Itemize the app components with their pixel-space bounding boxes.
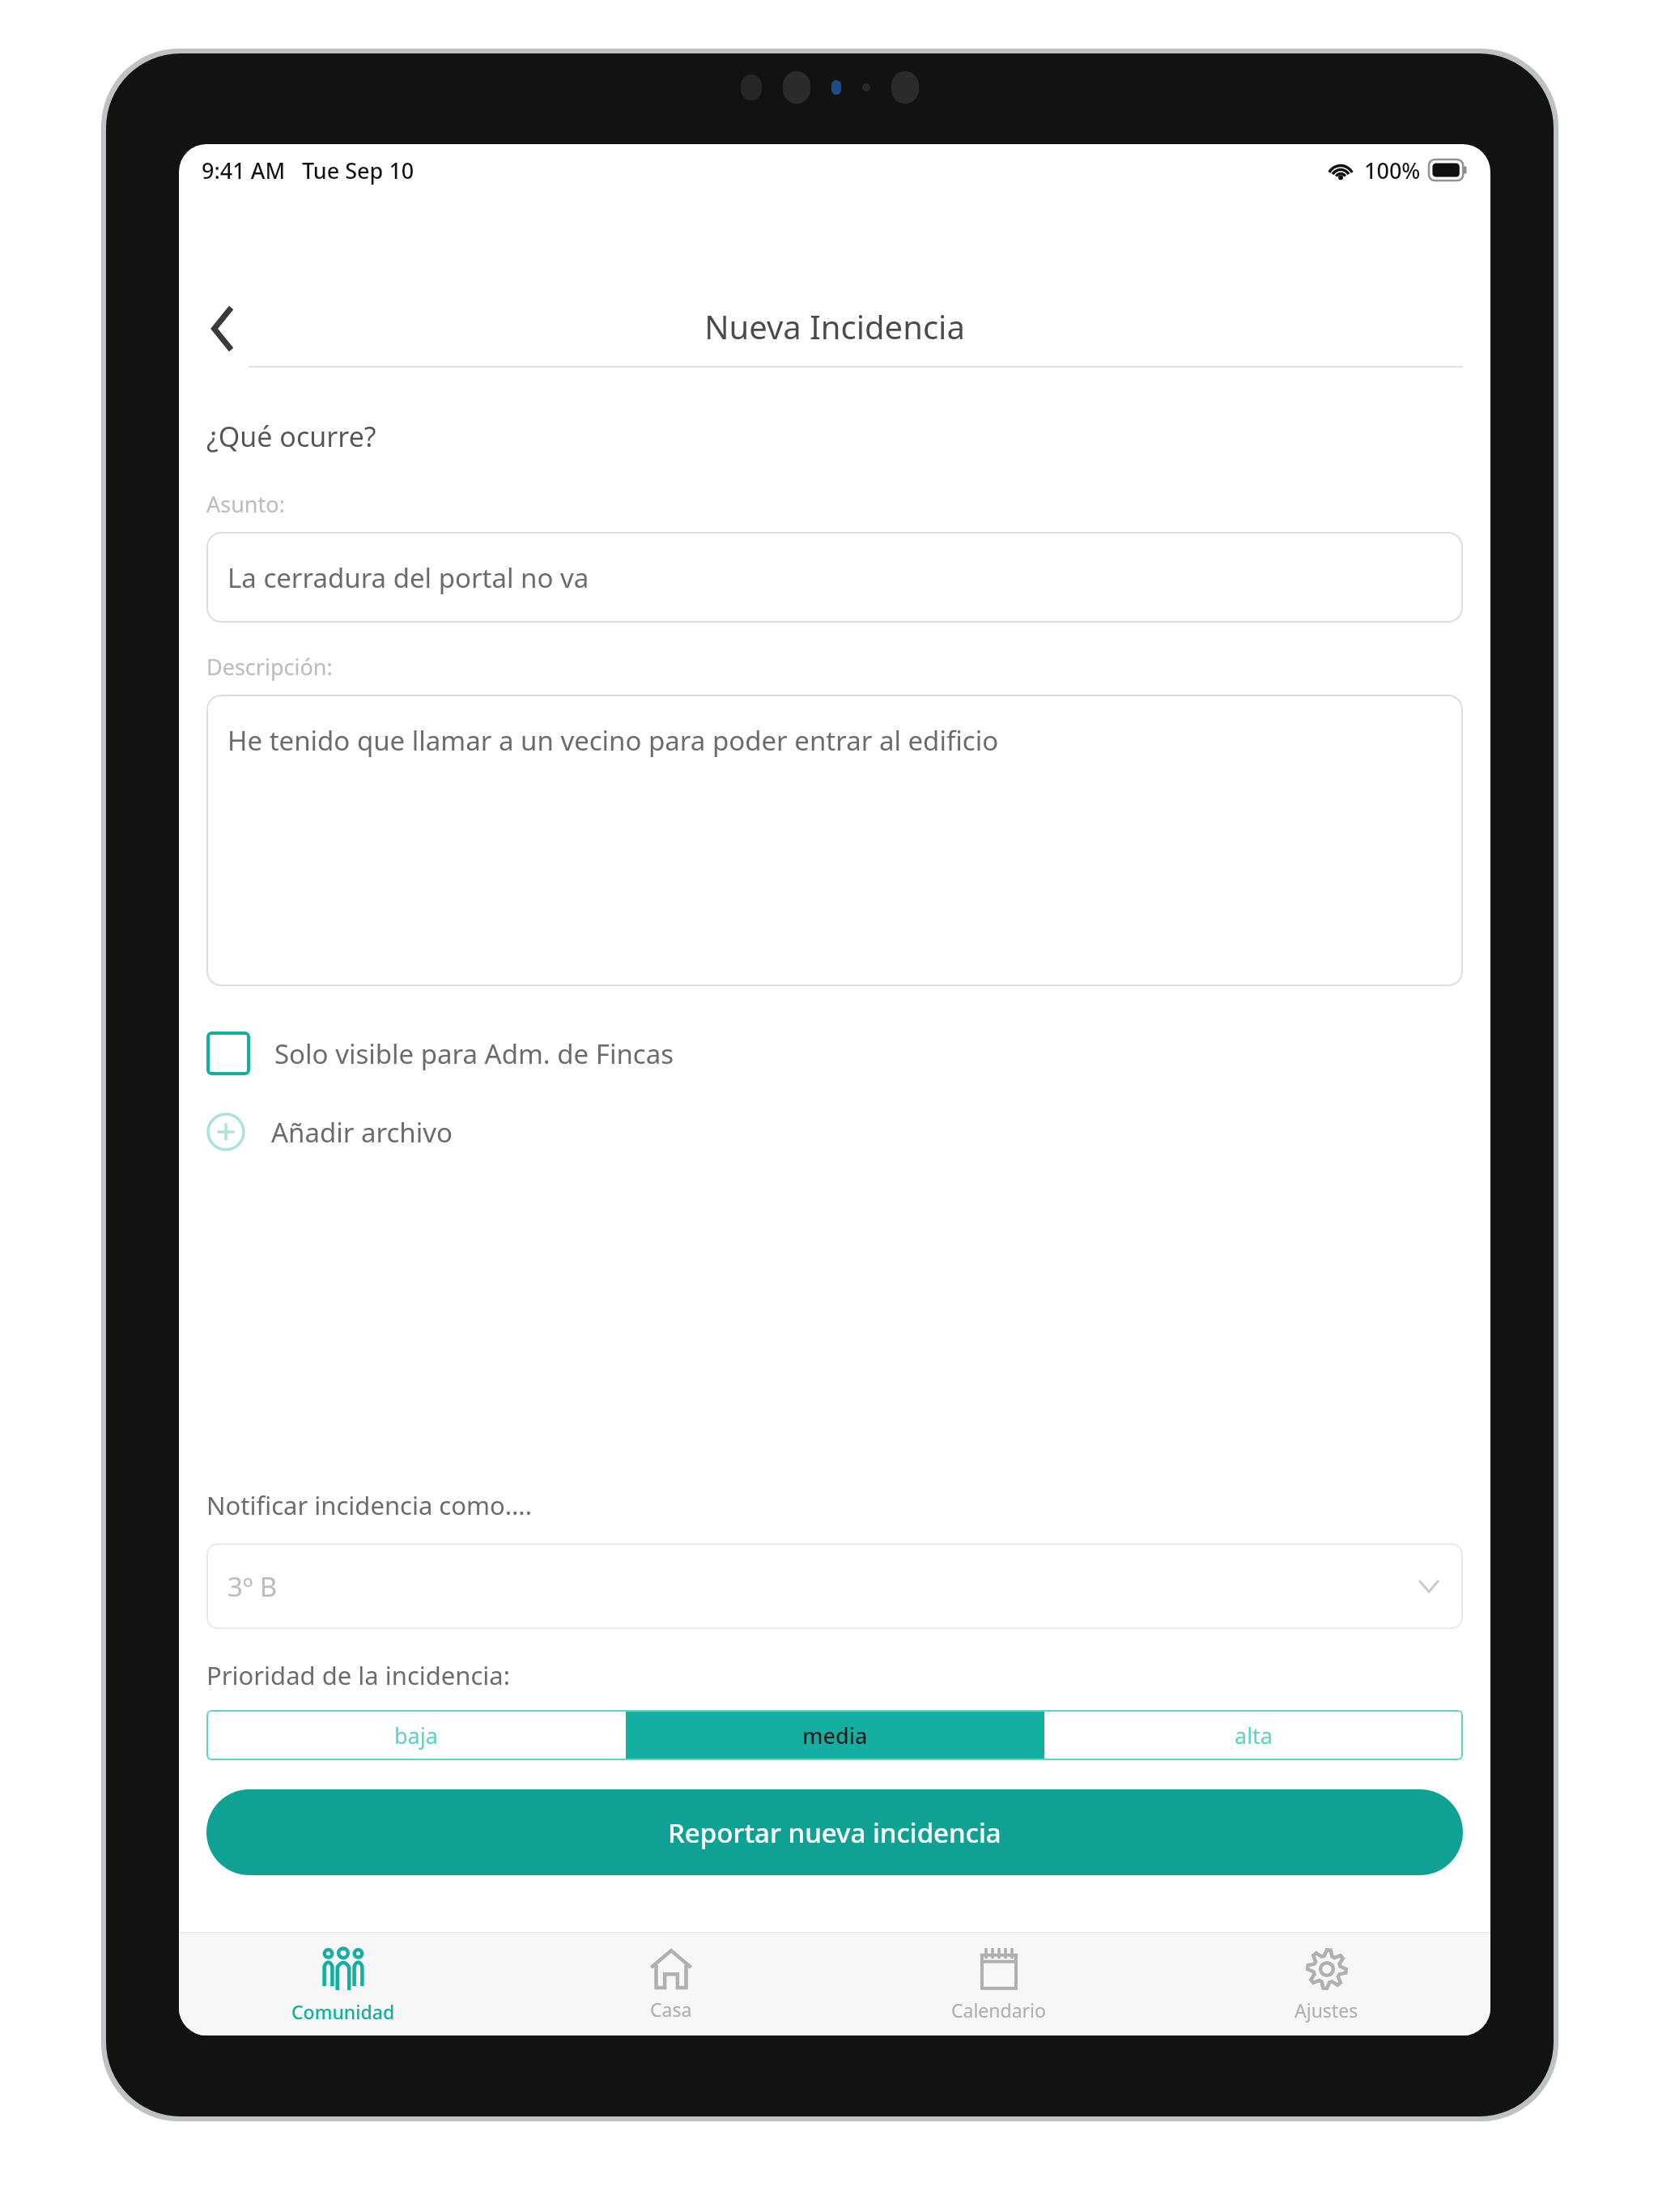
staticText: media [802,1721,868,1750]
button[interactable]: baja [206,1710,626,1760]
button[interactable]: Calendario [835,1933,1163,2035]
staticText: Ajustes [1295,1997,1358,2023]
button[interactable]: Casa [507,1933,835,2035]
button[interactable]: Comunidad [179,1933,507,2035]
staticText: alta [1235,1721,1273,1750]
button[interactable]: 3º B [206,1543,1463,1629]
staticText: 9:41 AM [202,155,286,185]
staticText: Tue Sep 10 [302,155,414,185]
staticText: Solo visible para Adm. de Fincas [274,1036,674,1072]
staticText: Asunto: [206,489,285,519]
staticText: Añadir archivo [271,1114,453,1151]
button[interactable]: Reportar nueva incidencia [206,1789,1463,1875]
staticText: Notificar incidencia como.... [206,1488,532,1522]
staticText: Casa [650,1997,692,2022]
button[interactable]: Back [187,292,260,365]
staticText: ¿Qué ocurre? [206,418,376,455]
button[interactable]: La cerradura del portal no va [206,532,1463,623]
button[interactable]: Ajustes [1163,1933,1490,2035]
staticText: He tenido que llamar a un vecino para po… [227,722,999,759]
staticText: 100% [1364,155,1421,185]
button[interactable]: Solo visible para Adm. de Fincas [206,1032,1463,1075]
button[interactable]: media [626,1710,1044,1760]
staticText: Descripción: [206,652,333,682]
staticText: Reportar nueva incidencia [668,1814,1001,1851]
staticText: Nueva Incidencia [704,304,965,348]
button[interactable]: He tenido que llamar a un vecino para po… [206,695,1463,986]
button[interactable]: Añadir archivo [206,1112,1463,1151]
staticText: Calendario [951,1997,1046,2023]
staticText: baja [394,1721,438,1750]
staticText: 3º B [227,1568,278,1605]
staticText: La cerradura del portal no va [227,559,589,596]
staticText: Comunidad [291,1999,395,2024]
staticText: Prioridad de la incidencia: [206,1658,511,1692]
button[interactable]: alta [1044,1710,1463,1760]
